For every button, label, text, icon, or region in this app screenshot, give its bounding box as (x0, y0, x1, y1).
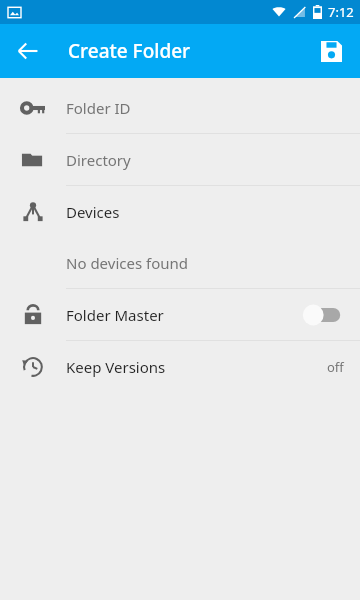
button[interactable]: Save (310, 30, 352, 72)
staticText: Folder Master (66, 305, 302, 325)
staticText: Folder ID (66, 98, 131, 118)
button[interactable]: Back (6, 29, 50, 73)
staticText: 7:12 (328, 3, 354, 21)
button[interactable]: Folder Master toggle (302, 302, 344, 328)
button[interactable]: Devices (0, 186, 360, 237)
button[interactable]: Folder ID (0, 82, 360, 133)
staticText: Devices (66, 202, 120, 222)
staticText: No devices found (66, 253, 188, 273)
button[interactable]: No devices found (0, 237, 360, 288)
staticText: Create Folder (68, 38, 191, 64)
button[interactable]: Keep Versions (0, 341, 360, 392)
staticText: Directory (66, 150, 131, 170)
staticText: Keep Versions (66, 357, 327, 377)
staticText: off (327, 358, 344, 376)
button[interactable]: Folder Master (0, 289, 360, 340)
button[interactable]: Directory (0, 134, 360, 185)
